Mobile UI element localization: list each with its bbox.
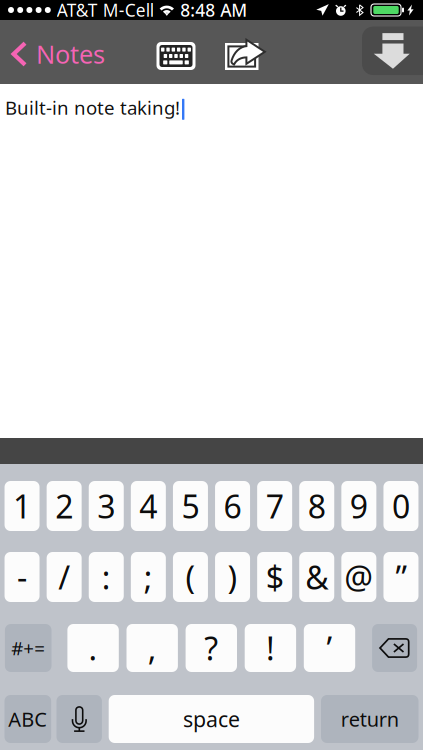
button[interactable]: 9 [341, 481, 376, 531]
button[interactable]: space [109, 695, 314, 743]
staticText: & [305, 556, 328, 598]
button[interactable]: ? [186, 624, 237, 672]
staticText: Notes [36, 37, 105, 71]
staticText: $ [266, 556, 284, 598]
staticText: ABC [8, 706, 47, 732]
button[interactable]: ’ [304, 624, 355, 672]
staticText: ’ [326, 627, 332, 669]
staticText: 9 [350, 485, 368, 527]
staticText: ( [185, 556, 195, 598]
button[interactable]: Keyboard [149, 28, 203, 84]
staticText: 0 [392, 485, 410, 527]
button[interactable]: 4 [131, 481, 166, 531]
staticText: Built-in note taking! [5, 95, 180, 120]
button[interactable]: , [126, 624, 178, 672]
button[interactable]: #+= [5, 624, 51, 672]
staticText: return [341, 706, 399, 732]
staticText: ) [228, 556, 238, 598]
button[interactable]: 8 [299, 481, 334, 531]
staticText: , [148, 627, 157, 669]
staticText: 3 [97, 485, 115, 527]
button[interactable]: 7 [257, 481, 292, 531]
button[interactable]: : [89, 552, 124, 602]
staticText: : [102, 556, 111, 598]
staticText: space [183, 705, 240, 733]
button[interactable]: Hide keyboard [362, 27, 423, 75]
staticText: 6 [224, 485, 242, 527]
staticText: 8 [308, 485, 326, 527]
staticText: 5 [181, 485, 199, 527]
button[interactable]: ! [245, 624, 296, 672]
button[interactable]: ) [215, 552, 250, 602]
staticText: 8:48 AM [180, 0, 247, 21]
button[interactable]: ” [383, 552, 418, 602]
button[interactable]: 2 [47, 481, 82, 531]
button[interactable]: ; [131, 552, 166, 602]
button[interactable]: ABC [4, 695, 51, 743]
button[interactable]: Delete [372, 624, 417, 672]
staticText: @ [344, 556, 373, 598]
button[interactable]: / [47, 552, 82, 602]
staticText: ” [395, 556, 406, 598]
button[interactable]: $ [257, 552, 292, 602]
button[interactable]: 0 [383, 481, 418, 531]
button[interactable]: 3 [89, 481, 124, 531]
staticText: / [58, 556, 70, 598]
button[interactable]: - [5, 552, 40, 602]
button[interactable]: 1 [5, 481, 40, 531]
staticText: ; [144, 556, 153, 598]
button[interactable]: . [67, 624, 119, 672]
staticText: #+= [11, 636, 45, 660]
button[interactable]: return [321, 695, 418, 743]
button[interactable]: 6 [215, 481, 250, 531]
staticText: ? [204, 627, 218, 669]
staticText: 4 [139, 485, 157, 527]
staticText: 2 [55, 485, 73, 527]
staticText: ! [266, 627, 275, 669]
button[interactable]: @ [341, 552, 376, 602]
button[interactable]: Notes [0, 26, 114, 82]
button[interactable]: Share [218, 28, 272, 84]
staticText: 7 [266, 485, 284, 527]
button[interactable]: 5 [173, 481, 208, 531]
staticText: . [89, 627, 98, 669]
button[interactable]: ( [173, 552, 208, 602]
button[interactable]: & [299, 552, 334, 602]
button[interactable]: Dictation [56, 695, 102, 743]
staticText: - [17, 556, 27, 598]
staticText: 1 [13, 485, 31, 527]
staticText: AT&T M-Cell [57, 0, 154, 21]
